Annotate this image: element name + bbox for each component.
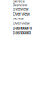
staticText: Dashboard [12,26,31,30]
staticText: Overview [12,3,27,7]
staticText: Overview [12,20,29,26]
staticText: Overview [12,12,29,17]
staticText: Dashboard [12,30,30,35]
staticText: Overview [12,17,23,20]
staticText: Overview [12,0,24,3]
staticText: Overview [12,7,28,12]
